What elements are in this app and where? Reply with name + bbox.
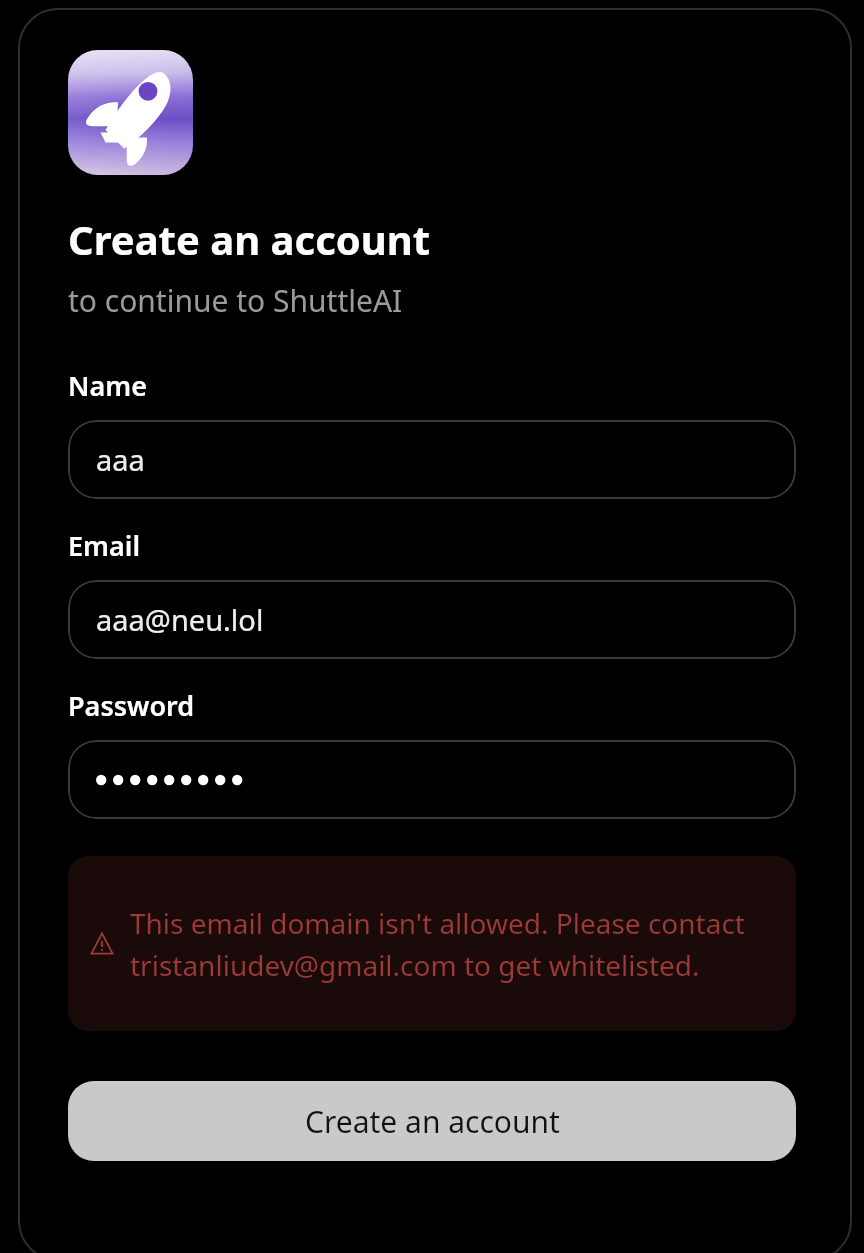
button[interactable]: aaa@neu.lol xyxy=(68,580,796,659)
staticText: to continue to ShuttleAI xyxy=(68,280,403,321)
staticText: Email xyxy=(68,527,141,564)
button[interactable]: Create an account xyxy=(68,1081,796,1161)
button[interactable]: aaa xyxy=(68,420,796,499)
other: ShuttleAI logo xyxy=(68,50,193,175)
staticText: Name xyxy=(68,367,147,404)
staticText: aaa@neu.lol xyxy=(96,600,264,639)
staticText: This email domain isn't allowed. Please … xyxy=(130,904,774,984)
staticText: Password xyxy=(68,687,195,724)
staticText: aaa xyxy=(96,440,145,479)
staticText: Create an account xyxy=(68,212,431,266)
button[interactable] xyxy=(68,740,796,819)
staticText: Create an account xyxy=(305,1101,560,1142)
